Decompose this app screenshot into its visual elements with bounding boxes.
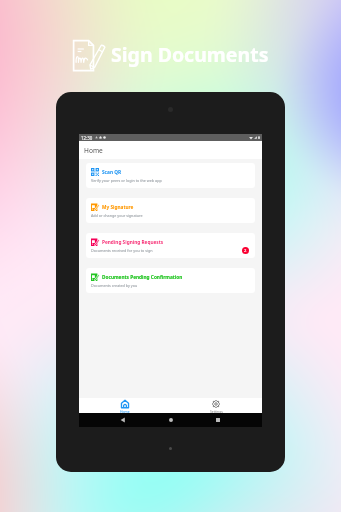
- staticText: Scan QR: [102, 169, 122, 175]
- staticText: Sign Documents: [111, 41, 269, 68]
- staticText: Settings: [210, 409, 223, 413]
- staticText: 2: [244, 248, 247, 254]
- staticText: Documents received for you to sign: [91, 248, 153, 253]
- staticText: Add or change your signature: [91, 213, 143, 218]
- staticText: Verify your peers or login to the web ap…: [91, 178, 162, 183]
- staticText: My Signature: [102, 204, 134, 210]
- other: Settings: [212, 400, 220, 408]
- staticText: Documents created by you: [91, 283, 138, 288]
- other: Recents: [215, 417, 221, 423]
- button[interactable]: Home: [79, 398, 170, 413]
- button[interactable]: Documents Pending Confirmation: [86, 268, 255, 293]
- staticText: Home: [120, 409, 130, 413]
- button[interactable]: My Signature: [86, 198, 255, 223]
- staticText: 12:30: [81, 135, 93, 141]
- staticText: Documents Pending Confirmation: [102, 274, 183, 280]
- staticText: Home: [84, 146, 103, 155]
- other: Home: [121, 400, 129, 408]
- other: Back: [120, 417, 126, 423]
- other: Home: [168, 417, 174, 423]
- button[interactable]: Scan QR: [86, 163, 255, 188]
- button[interactable]: Settings: [170, 398, 262, 413]
- button[interactable]: Pending Signing Requests: [86, 233, 255, 258]
- staticText: Pending Signing Requests: [102, 239, 164, 245]
